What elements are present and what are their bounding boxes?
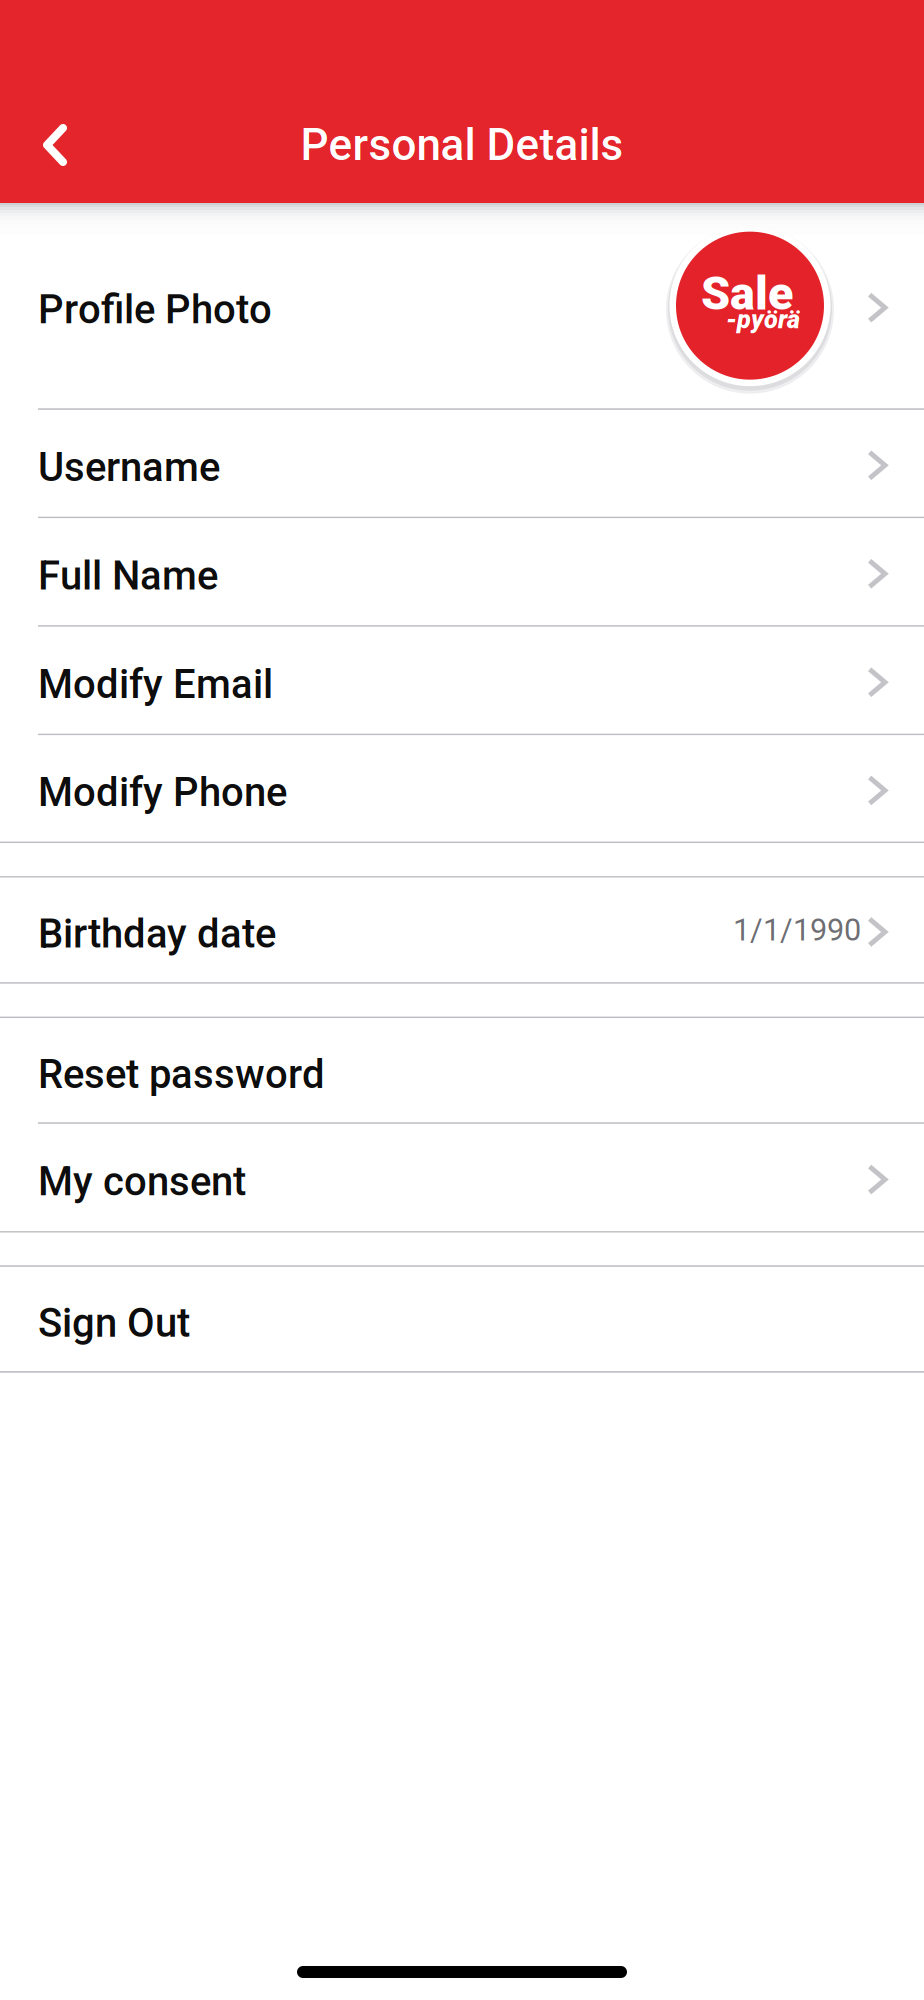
button[interactable]: Birthday date <box>0 878 924 982</box>
button[interactable]: Profile Photo <box>0 203 924 408</box>
button[interactable]: Username <box>0 410 924 517</box>
staticText: My consent <box>38 1158 246 1205</box>
staticText: Modify Email <box>38 661 273 708</box>
staticText: 1/1/1990 <box>733 912 861 948</box>
button[interactable]: My consent <box>0 1124 924 1231</box>
staticText: Birthday date <box>38 910 276 957</box>
staticText: Personal Details <box>300 119 623 171</box>
button[interactable]: Sign Out <box>0 1267 924 1371</box>
staticText: Username <box>38 444 220 491</box>
staticText: Sign Out <box>38 1300 190 1346</box>
staticText: -pyörä <box>726 305 800 334</box>
staticText: Modify Phone <box>38 769 287 816</box>
staticText: Sale <box>701 266 793 321</box>
button[interactable]: Full Name <box>0 518 924 625</box>
button[interactable]: Modify Email <box>0 627 924 734</box>
button[interactable]: Modify Phone <box>0 735 924 842</box>
staticText: Full Name <box>38 552 218 599</box>
button[interactable]: Back <box>0 87 110 203</box>
staticText: Profile Photo <box>38 286 272 333</box>
button[interactable]: Reset password <box>0 1018 924 1122</box>
staticText: Reset password <box>38 1051 325 1098</box>
